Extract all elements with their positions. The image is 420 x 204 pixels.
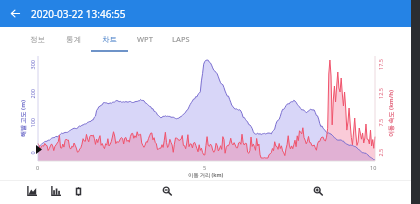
staticText: 이동 속도 (km/h) — [387, 89, 395, 137]
button[interactable]: Zoom out — [158, 182, 176, 200]
staticText: 100 — [28, 117, 35, 127]
staticText: 12.5 — [377, 88, 384, 99]
button[interactable]: Rotate chart — [69, 182, 87, 200]
staticText: 이동 거리 (km) — [188, 171, 224, 178]
staticText: 17.5 — [377, 59, 384, 70]
button[interactable]: Zoom in — [309, 182, 327, 200]
staticText: 통계 — [66, 35, 81, 44]
staticText: 7.5 — [376, 118, 383, 126]
staticText: 차트 — [102, 35, 117, 44]
staticText: 300 — [28, 59, 35, 69]
staticText: 10 — [370, 164, 377, 171]
button[interactable]: WPT — [127, 27, 163, 51]
staticText: 0 — [36, 164, 40, 171]
button[interactable]: 통계 — [55, 27, 91, 51]
button[interactable]: LAPS — [163, 27, 199, 51]
staticText: 0 — [28, 150, 35, 154]
button[interactable]: Bar chart — [47, 182, 65, 200]
button[interactable]: Back — [7, 5, 24, 22]
button[interactable]: 차트 — [91, 27, 127, 51]
staticText: LAPS — [172, 34, 190, 44]
staticText: 200 — [28, 88, 35, 98]
staticText: 해발 고도 (m) — [19, 99, 27, 137]
staticText: 2020-03-22 13:46:55 — [31, 7, 126, 21]
staticText: 2.5 — [376, 148, 383, 156]
button[interactable]: 정보 — [19, 27, 55, 51]
staticText: 5 — [203, 164, 207, 171]
staticText: 정보 — [30, 35, 45, 44]
button[interactable]: Elevation chart — [23, 182, 41, 200]
staticText: WPT — [137, 34, 153, 44]
button[interactable]: Back — [0, 0, 420, 27]
